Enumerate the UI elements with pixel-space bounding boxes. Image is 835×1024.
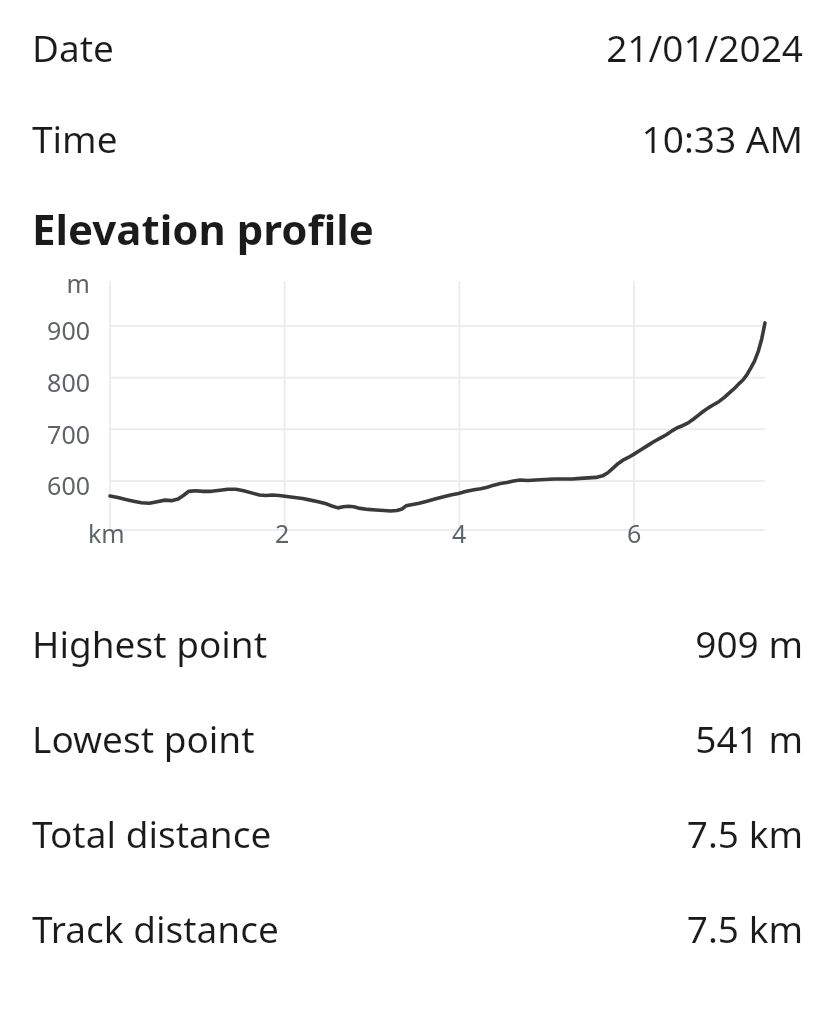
staticText: 700 [0, 417, 90, 451]
button[interactable]: Total distance [0, 785, 835, 880]
staticText: 600 [0, 468, 90, 502]
staticText: km [88, 516, 125, 550]
staticText: Track distance [32, 903, 279, 953]
other: Elevation profile chart [0, 261, 835, 541]
staticText: 6 [627, 516, 642, 550]
staticText: Highest point [32, 618, 268, 668]
staticText: 2 [275, 516, 290, 550]
staticText: Date [32, 22, 114, 72]
button[interactable]: Date [0, 0, 835, 94]
button[interactable]: Track distance [0, 880, 835, 975]
staticText: 800 [0, 365, 90, 399]
staticText: 21/01/2024 [122, 22, 803, 72]
button[interactable]: Highest point [0, 595, 835, 690]
staticText: 541 m [263, 713, 803, 763]
staticText: 4 [452, 516, 467, 550]
staticText: 7.5 km [287, 903, 803, 953]
staticText: 909 m [276, 618, 803, 668]
staticText: Elevation profile [32, 200, 374, 257]
staticText: 10:33 AM [126, 113, 803, 163]
staticText: 900 [0, 313, 90, 347]
button[interactable]: Time [0, 94, 835, 182]
staticText: 7.5 km [280, 808, 803, 858]
staticText: m [0, 266, 90, 300]
staticText: Time [32, 113, 118, 163]
staticText: Total distance [32, 808, 272, 858]
button[interactable]: Lowest point [0, 690, 835, 785]
staticText: Lowest point [32, 713, 255, 763]
